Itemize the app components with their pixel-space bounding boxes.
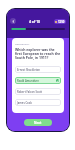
button[interactable]: Roald Amundsen xyxy=(15,77,61,84)
staticText: Roald Amundsen xyxy=(17,79,39,83)
staticText: 1250 xyxy=(58,20,65,24)
button[interactable]: Back xyxy=(10,18,16,24)
staticText: GEOGRAPHY xyxy=(15,42,30,45)
button[interactable]: Ernest Shackleton xyxy=(15,66,61,73)
button[interactable]: Next xyxy=(24,119,52,126)
button[interactable]: Robert Falcon Scott xyxy=(15,88,61,95)
staticText: 4 of 10 xyxy=(29,19,41,24)
staticText: Robert Falcon Scott xyxy=(17,90,42,94)
staticText: James Cook xyxy=(17,101,32,105)
button[interactable]: James Cook xyxy=(15,99,61,106)
staticText: Ernest Shackleton xyxy=(17,68,41,72)
staticText: Next xyxy=(34,121,42,125)
button[interactable]: 1250 xyxy=(54,19,66,24)
staticText: Which explorer was the first European to… xyxy=(15,47,61,60)
